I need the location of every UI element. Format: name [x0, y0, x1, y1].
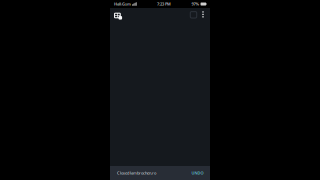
- button[interactable]: UNDO: [190, 168, 205, 178]
- staticText: Closed lambrochen.ro: [117, 170, 156, 176]
- staticText: Hall-Gsm: [114, 1, 131, 7]
- staticText: UNDO: [191, 170, 203, 176]
- staticText: 97%: [192, 1, 200, 7]
- button[interactable]: Tabs: [114, 8, 126, 24]
- button[interactable]: More options: [199, 8, 207, 24]
- staticText: 7:23 PM: [157, 1, 171, 7]
- button[interactable]: New tab: [188, 8, 199, 24]
